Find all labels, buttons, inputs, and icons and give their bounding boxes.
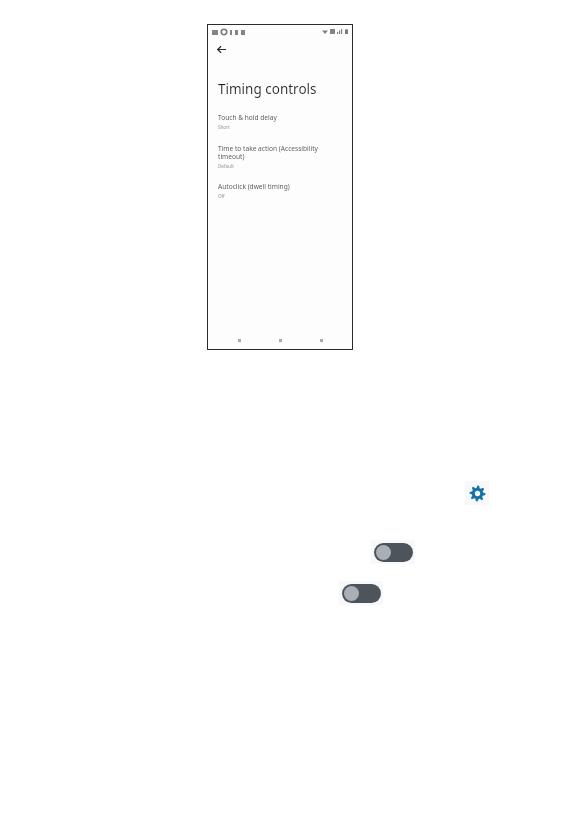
button[interactable]: Toggle, off bbox=[339, 581, 383, 605]
staticText: Timing controls bbox=[218, 80, 317, 98]
button[interactable]: Back bbox=[232, 333, 246, 347]
staticText: Off bbox=[218, 193, 225, 199]
button[interactable]: Time to take action (Accessibility timeo… bbox=[208, 143, 352, 170]
staticText: Default bbox=[218, 163, 234, 169]
staticText: Short bbox=[218, 124, 230, 130]
button[interactable]: Toggle, off bbox=[371, 540, 415, 564]
button[interactable]: Home bbox=[273, 333, 287, 347]
button[interactable]: Navigate up bbox=[213, 41, 229, 57]
staticText: Autoclick (dwell timing) bbox=[218, 182, 290, 191]
button[interactable]: Autoclick (dwell timing) bbox=[208, 181, 352, 200]
staticText: Touch & hold delay bbox=[218, 113, 277, 122]
staticText: Time to take action (Accessibility timeo… bbox=[218, 144, 342, 161]
button[interactable]: Touch & hold delay bbox=[208, 112, 352, 131]
button[interactable]: Recents bbox=[314, 333, 328, 347]
button[interactable]: Settings bbox=[465, 481, 489, 505]
